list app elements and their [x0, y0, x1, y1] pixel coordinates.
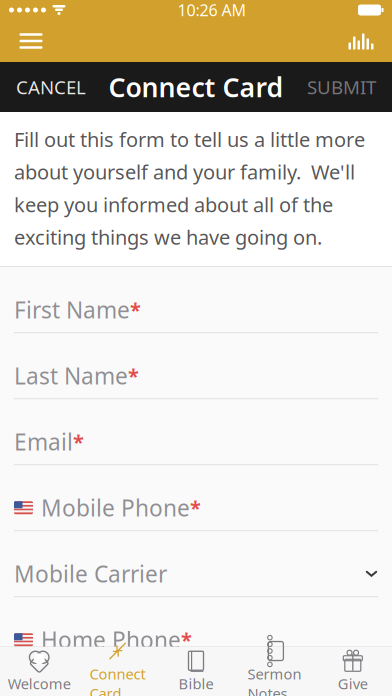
button[interactable]: Welcome: [0, 647, 78, 696]
staticText: *: [190, 494, 201, 521]
staticText: Connect Card: [90, 664, 146, 696]
staticText: Connect Card: [108, 69, 283, 105]
staticText: Mobile Carrier: [14, 559, 167, 589]
button[interactable]: SUBMIT: [291, 62, 392, 112]
button[interactable]: Menu: [8, 20, 54, 62]
staticText: Give: [338, 674, 368, 693]
staticText: *: [130, 296, 141, 323]
staticText: *: [181, 626, 192, 653]
button[interactable]: Mobile Carrier: [0, 531, 392, 597]
staticText: Last Name: [14, 361, 128, 391]
button[interactable]: Give: [314, 647, 392, 696]
staticText: Email: [14, 427, 73, 457]
staticText: First Name: [14, 295, 130, 325]
button[interactable]: Now Playing: [338, 20, 384, 62]
button[interactable]: Sermon Notes: [235, 647, 314, 696]
button[interactable]: CANCEL: [0, 62, 102, 112]
staticText: Mobile Phone: [41, 493, 190, 523]
staticText: CANCEL: [16, 75, 86, 99]
staticText: SUBMIT: [307, 75, 376, 99]
button[interactable]: Mobile Phone: [0, 465, 392, 531]
staticText: *: [128, 362, 139, 389]
staticText: 10:26 AM: [177, 0, 246, 21]
staticText: Sermon Notes: [247, 664, 301, 696]
button[interactable]: Home Phone: [0, 597, 392, 663]
button[interactable]: Last Name: [0, 333, 392, 399]
staticText: Welcome: [8, 674, 71, 693]
staticText: Bible: [178, 674, 213, 693]
button[interactable]: Email: [0, 399, 392, 465]
button[interactable]: First Name: [0, 267, 392, 333]
staticText: Fill out this form to tell us a little m…: [14, 126, 365, 250]
staticText: Home Phone: [41, 625, 181, 655]
button[interactable]: Bible: [157, 647, 235, 696]
button[interactable]: Connect Card: [78, 647, 157, 696]
staticText: *: [73, 428, 84, 455]
